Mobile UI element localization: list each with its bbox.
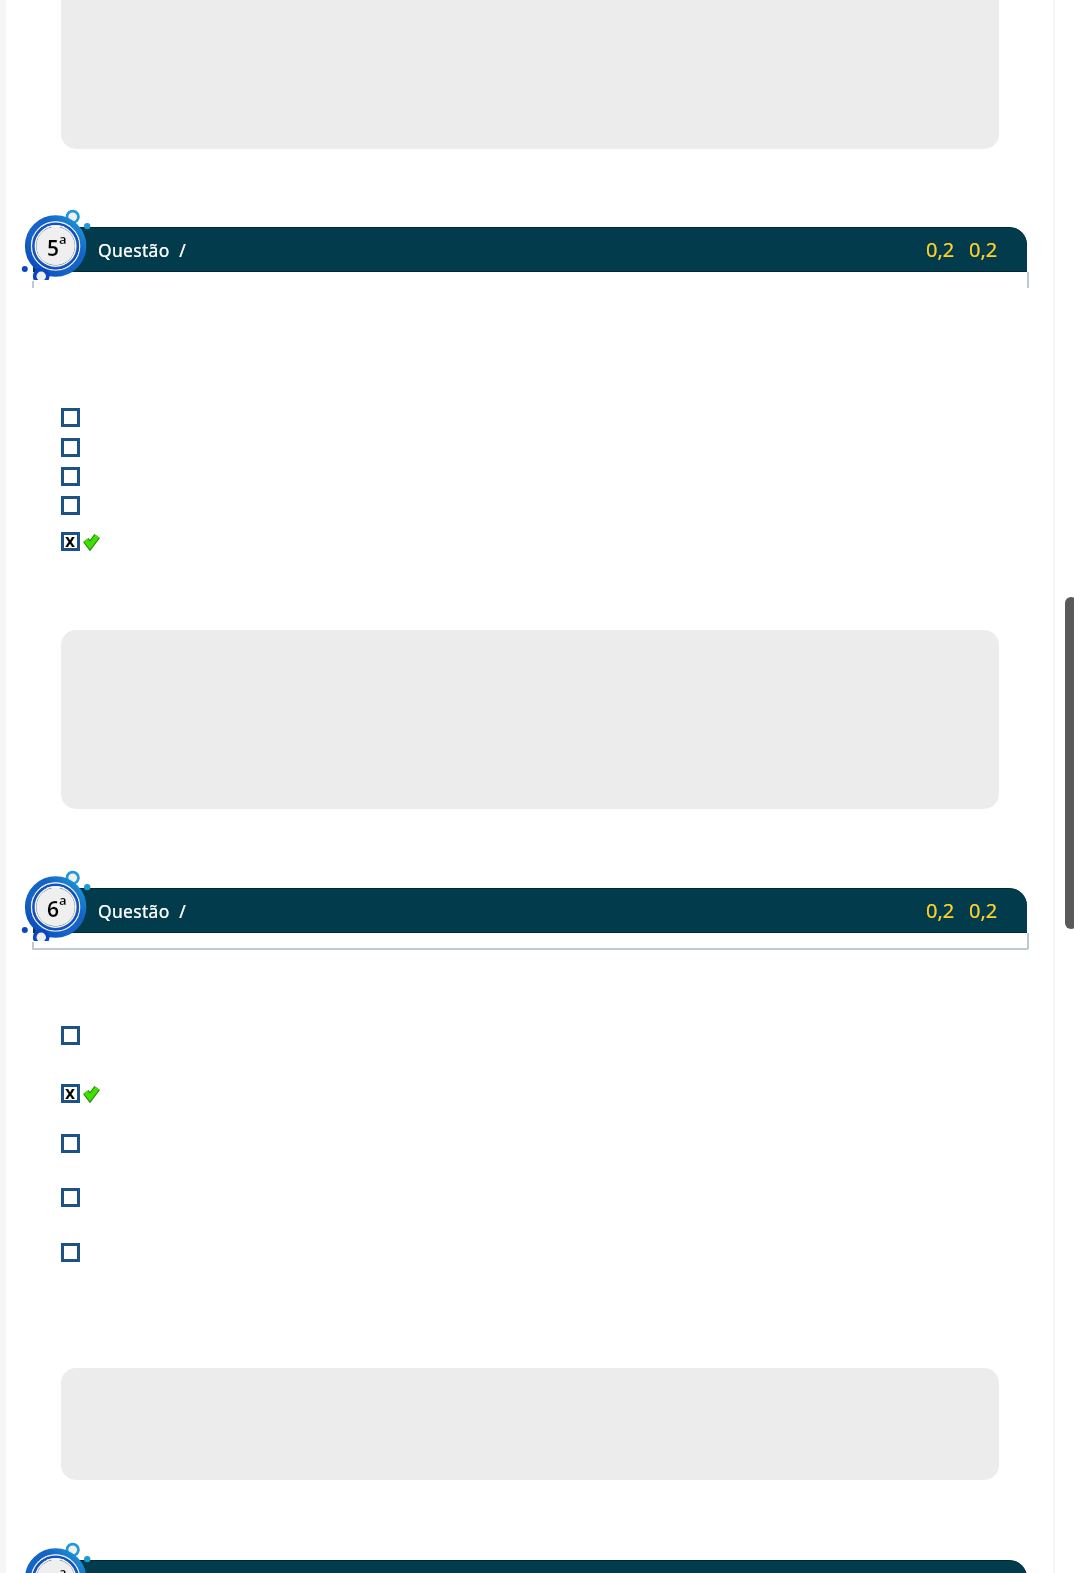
button[interactable]: [61, 496, 80, 515]
staticText: X: [65, 1084, 76, 1103]
staticText: Questão /: [98, 238, 187, 262]
button[interactable]: [61, 408, 80, 427]
button[interactable]: [61, 1134, 80, 1153]
staticText: 0,2: [969, 236, 998, 263]
button[interactable]: [61, 438, 80, 457]
staticText: Questão /: [98, 899, 187, 923]
button[interactable]: Questão /: [33, 889, 1027, 932]
staticText: 6: [47, 895, 60, 924]
staticText: 0,2: [969, 897, 998, 924]
staticText: a: [59, 230, 67, 248]
button[interactable]: Questão /: [33, 228, 1027, 271]
staticText: a: [59, 1563, 67, 1573]
button[interactable]: X: [61, 532, 99, 551]
other: Questão 7: [20, 1518, 100, 1573]
other: Questão 6: [20, 846, 100, 941]
button[interactable]: Questão /: [33, 1561, 1027, 1573]
staticText: 0,2: [926, 897, 955, 924]
other: Questão 5: [20, 185, 100, 280]
button[interactable]: [61, 1026, 80, 1045]
button[interactable]: X: [61, 1084, 99, 1103]
staticText: 5: [47, 234, 60, 263]
staticText: a: [59, 891, 67, 909]
button[interactable]: [61, 1188, 80, 1207]
staticText: X: [65, 532, 76, 551]
button[interactable]: [61, 1243, 80, 1262]
staticText: 0,2: [926, 236, 955, 263]
button[interactable]: [61, 467, 80, 486]
